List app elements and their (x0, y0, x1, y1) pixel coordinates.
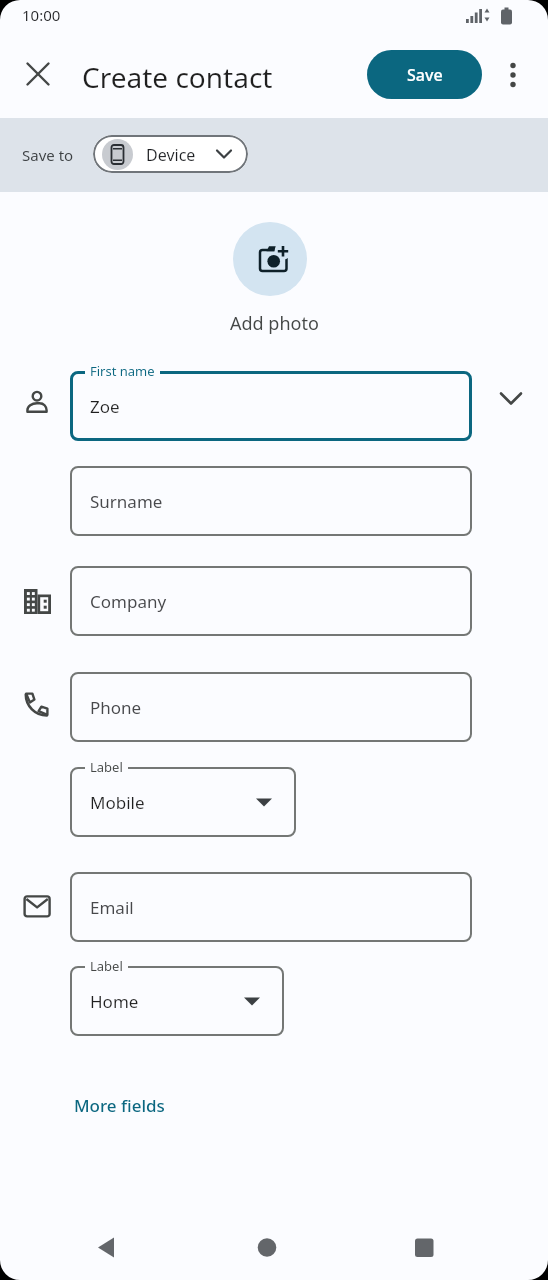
staticText: 10:00 (22, 5, 61, 25)
button[interactable]: Zoe (70, 371, 472, 441)
staticText: Add photo (230, 311, 319, 336)
staticText: Label (90, 957, 123, 975)
staticText: Create contact (82, 58, 273, 96)
staticText: First name (90, 362, 155, 380)
button[interactable]: Save (367, 50, 482, 99)
staticText: Company (90, 590, 167, 613)
button[interactable]: Home (70, 966, 284, 1036)
staticText: Zoe (90, 395, 120, 418)
staticText: Device (146, 144, 196, 166)
button[interactable]: Phone (70, 672, 472, 742)
staticText: Email (90, 896, 134, 919)
button[interactable] (24, 60, 52, 88)
button[interactable]: Mobile (70, 767, 296, 837)
button[interactable]: Email (70, 872, 472, 942)
button[interactable]: Company (70, 566, 472, 636)
button[interactable]: More fields (60, 1085, 179, 1126)
staticText: Surname (90, 490, 163, 513)
staticText: Phone (90, 696, 142, 719)
button[interactable] (498, 390, 524, 408)
button[interactable]: Surname (70, 466, 472, 536)
button[interactable] (233, 222, 307, 296)
staticText: Mobile (90, 791, 145, 814)
staticText: More fields (74, 1094, 165, 1117)
staticText: Save to (22, 145, 74, 165)
staticText: Save (407, 64, 443, 86)
staticText: Home (90, 990, 139, 1013)
staticText: Label (90, 758, 123, 776)
button[interactable]: Device (93, 135, 248, 173)
button[interactable] (501, 62, 525, 88)
